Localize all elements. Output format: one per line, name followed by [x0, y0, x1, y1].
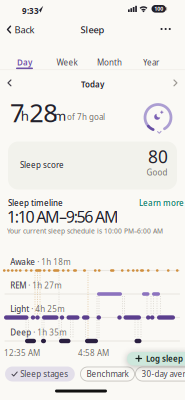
button[interactable] — [7, 79, 11, 86]
staticText: Benchmark — [86, 369, 128, 379]
staticText: 30-day average — [141, 369, 185, 379]
staticText: Deep — [10, 327, 31, 338]
staticText: Day — [17, 57, 32, 68]
staticText: 7 — [10, 95, 24, 129]
staticText: Awake — [10, 256, 35, 267]
staticText: h — [21, 107, 29, 124]
staticText: Sleep — [80, 23, 104, 36]
button[interactable]: Sleep stages — [5, 366, 75, 381]
staticText: m — [54, 107, 66, 124]
staticText: Back — [14, 23, 34, 36]
staticText: 4:58 AM — [78, 347, 109, 358]
staticText: Sleep score — [20, 159, 64, 170]
staticText: 100 — [154, 5, 163, 12]
staticText: Light — [10, 303, 29, 314]
staticText: Log sleep — [146, 353, 183, 364]
staticText: Good — [146, 167, 167, 178]
staticText: Week — [56, 57, 77, 68]
staticText: Month — [97, 57, 122, 68]
button[interactable]: Back — [7, 23, 34, 36]
button[interactable]: Day — [2, 57, 47, 68]
button[interactable] — [173, 79, 177, 86]
button[interactable]: 30-day average — [135, 366, 185, 381]
button[interactable]: Learn more — [139, 197, 184, 208]
staticText: · 4h 25m — [29, 303, 64, 314]
button[interactable]: Week — [44, 57, 89, 68]
staticText: Your current sleep schedule is 10:00 PM–… — [7, 226, 163, 235]
staticText: Sleep timeline — [8, 197, 63, 208]
staticText: REM — [10, 280, 26, 291]
button[interactable]: Log sleep — [127, 352, 185, 365]
button[interactable]: Year — [128, 57, 173, 68]
staticText: · 1h 27m — [26, 280, 61, 291]
staticText: Year — [143, 57, 159, 68]
staticText: 9:33 — [22, 5, 39, 16]
button[interactable]: Month — [87, 57, 132, 68]
staticText: · 1h 35m — [31, 327, 66, 338]
button[interactable]: Benchmark — [80, 366, 135, 381]
button[interactable]: Sleep score — [8, 141, 177, 189]
button[interactable] — [160, 24, 171, 34]
staticText: Today — [81, 79, 104, 90]
staticText: of 7h goal — [67, 111, 105, 122]
staticText: 80 — [148, 145, 168, 168]
staticText: Learn more — [139, 197, 184, 208]
staticText: · 1h 18m — [35, 256, 70, 267]
staticText: 28 — [29, 95, 57, 129]
staticText: 12:35 AM — [4, 347, 40, 358]
staticText: 1:10 AM–9:56 AM — [7, 206, 119, 227]
staticText: Sleep stages — [20, 369, 68, 379]
